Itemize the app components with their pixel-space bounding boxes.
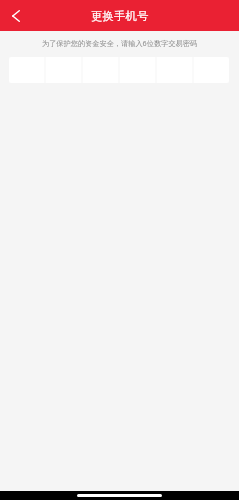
button[interactable]: Back <box>0 0 31 31</box>
staticText: 更换手机号 <box>91 9 149 23</box>
staticText: 为了保护您的资金安全，请输入6位数字交易密码 <box>0 38 239 48</box>
